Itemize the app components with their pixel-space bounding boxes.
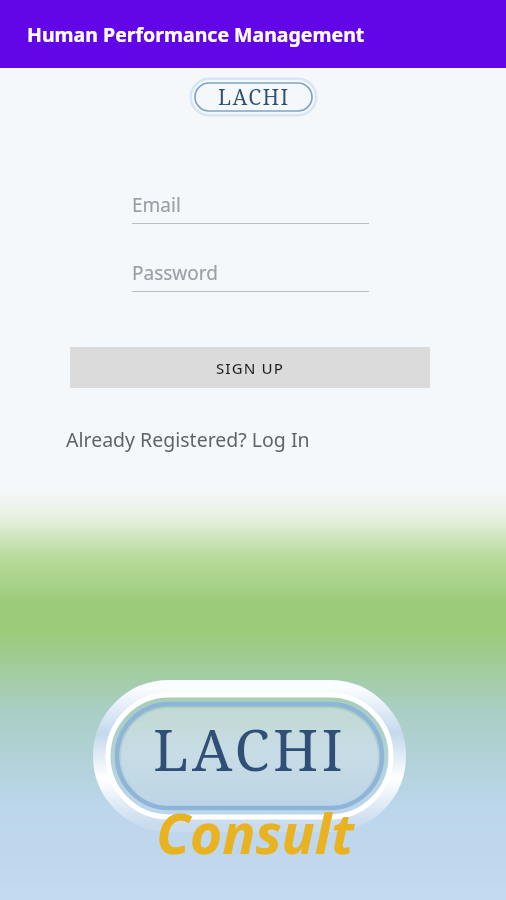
button[interactable]: Password bbox=[132, 260, 369, 292]
staticText: LACHI bbox=[218, 83, 290, 112]
staticText: Human Performance Management bbox=[27, 21, 365, 48]
staticText: SIGN UP bbox=[216, 358, 284, 378]
staticText: Already Registered? Log In bbox=[66, 426, 310, 453]
staticText: Password bbox=[132, 260, 218, 286]
button[interactable]: Already Registered? Log In bbox=[62, 420, 314, 459]
staticText: Email bbox=[132, 192, 181, 218]
staticText: LACHI bbox=[153, 710, 347, 788]
button[interactable]: Email bbox=[132, 192, 369, 224]
button[interactable]: SIGN UP bbox=[70, 347, 430, 388]
staticText: Consult bbox=[140, 795, 370, 870]
